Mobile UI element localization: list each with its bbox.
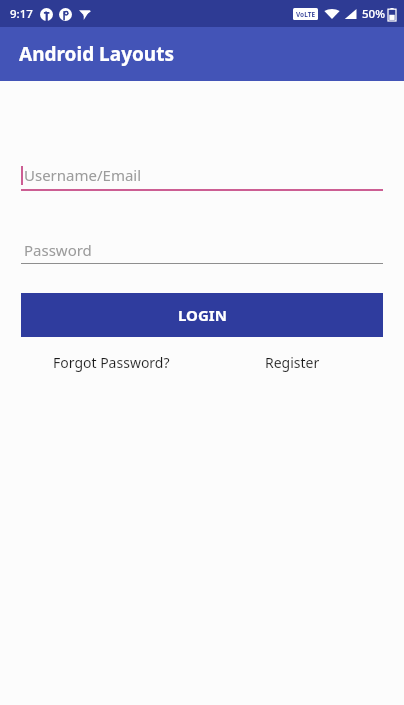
button[interactable]: Register xyxy=(202,353,383,372)
staticText: VoLTE xyxy=(296,10,316,19)
staticText: Username/Email xyxy=(24,165,142,185)
staticText: 9:17 xyxy=(10,6,33,22)
staticText: LOGIN xyxy=(178,305,227,325)
button[interactable]: Forgot Password? xyxy=(21,353,202,372)
staticText: Register xyxy=(265,353,320,372)
staticText: 50% xyxy=(362,6,385,22)
button[interactable]: Password xyxy=(21,237,383,264)
staticText: Password xyxy=(24,240,92,260)
staticText: Forgot Password? xyxy=(53,353,170,372)
button[interactable]: LOGIN xyxy=(21,293,383,337)
button[interactable]: Username/Email xyxy=(21,161,383,191)
staticText: Android Layouts xyxy=(19,41,174,67)
